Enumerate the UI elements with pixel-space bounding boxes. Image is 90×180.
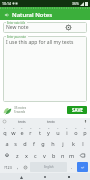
button[interactable]: 1 bbox=[1, 125, 9, 137]
button[interactable]: h bbox=[48, 137, 58, 149]
staticText: ?123 bbox=[4, 165, 12, 170]
staticText: English bbox=[44, 165, 54, 169]
button[interactable]: 3 bbox=[17, 125, 26, 137]
button[interactable]: 5 bbox=[35, 125, 44, 137]
staticText: 8 bbox=[66, 126, 68, 129]
button[interactable]: texts bbox=[7, 118, 36, 125]
staticText: New note bbox=[6, 24, 29, 31]
button[interactable]: Back bbox=[18, 174, 24, 180]
staticText: 36% bbox=[72, 1, 79, 6]
button[interactable]: ?123 bbox=[1, 162, 14, 172]
staticText: c bbox=[34, 152, 37, 159]
staticText: p bbox=[83, 129, 87, 136]
button[interactable]: Voice input bbox=[83, 119, 88, 124]
button[interactable]: 0 bbox=[80, 125, 89, 137]
staticText: s bbox=[14, 140, 17, 147]
staticText: h bbox=[51, 140, 55, 147]
button[interactable]: Back bbox=[3, 11, 10, 18]
staticText: o bbox=[74, 129, 78, 136]
button[interactable]: n bbox=[58, 149, 67, 161]
button[interactable]: s bbox=[11, 137, 20, 149]
button[interactable]: j bbox=[58, 137, 68, 149]
button[interactable]: m bbox=[67, 149, 76, 161]
staticText: m bbox=[69, 152, 75, 159]
button[interactable]: 6 bbox=[44, 125, 53, 137]
button[interactable]: Recents bbox=[66, 174, 72, 180]
staticText: 7 bbox=[57, 126, 59, 129]
staticText: 9 bbox=[75, 126, 77, 129]
button[interactable]: g bbox=[38, 137, 48, 149]
staticText: l bbox=[82, 140, 84, 147]
button[interactable]: k bbox=[68, 137, 78, 149]
button[interactable]: Space bbox=[30, 162, 67, 172]
staticText: f bbox=[33, 140, 35, 147]
button[interactable]: Clipboard bbox=[2, 119, 7, 124]
staticText: i bbox=[66, 129, 68, 136]
button[interactable]: 7 bbox=[53, 125, 62, 137]
button[interactable]: Shift bbox=[1, 149, 13, 161]
button[interactable]: d bbox=[20, 137, 29, 149]
staticText: 35 notes bbox=[14, 106, 27, 110]
staticText: a bbox=[5, 140, 9, 147]
staticText: , bbox=[17, 164, 19, 170]
button[interactable]: 9 bbox=[71, 125, 80, 137]
button[interactable]: Enter bbox=[77, 162, 88, 172]
staticText: Natural Notes bbox=[12, 11, 53, 19]
staticText: x bbox=[25, 152, 28, 159]
button[interactable] bbox=[3, 36, 87, 102]
button[interactable]: Backspace bbox=[76, 149, 89, 161]
staticText: z bbox=[16, 152, 19, 159]
button[interactable] bbox=[3, 22, 87, 33]
button[interactable]: 4 bbox=[26, 125, 35, 137]
staticText: 6 bbox=[48, 126, 50, 129]
staticText: v bbox=[43, 152, 46, 159]
staticText: textx bbox=[47, 119, 55, 124]
staticText: n bbox=[61, 152, 65, 159]
button[interactable]: Period bbox=[68, 162, 76, 172]
button[interactable]: Emoji bbox=[21, 162, 29, 172]
staticText: u bbox=[56, 129, 60, 136]
staticText: I use this app for all my texts bbox=[6, 39, 74, 46]
button[interactable]: v bbox=[40, 149, 49, 161]
button[interactable]: f bbox=[29, 137, 38, 149]
staticText: 3 bbox=[21, 126, 23, 129]
button[interactable]: z bbox=[13, 149, 22, 161]
button[interactable]: Home bbox=[42, 174, 48, 180]
button[interactable]: Comma bbox=[14, 162, 21, 172]
staticText: 0 bbox=[84, 126, 86, 129]
staticText: texts bbox=[18, 119, 26, 124]
button[interactable]: a bbox=[2, 137, 11, 149]
staticText: k bbox=[72, 140, 75, 147]
staticText: . bbox=[71, 164, 73, 170]
staticText: w bbox=[11, 129, 16, 136]
staticText: d bbox=[23, 140, 27, 147]
staticText: 1 bbox=[4, 126, 6, 129]
button[interactable]: textx bbox=[36, 118, 65, 125]
staticText: j bbox=[62, 140, 64, 147]
staticText: 2 bbox=[13, 126, 15, 129]
button[interactable]: 2 bbox=[9, 125, 17, 137]
button[interactable]: l bbox=[78, 137, 88, 149]
staticText: 5 bbox=[39, 126, 41, 129]
staticText: Enter your note bbox=[7, 35, 27, 39]
button[interactable]: c bbox=[31, 149, 40, 161]
staticText: 10:14 bbox=[2, 1, 11, 6]
staticText: q bbox=[3, 129, 7, 136]
staticText: r bbox=[29, 129, 32, 136]
button[interactable]: Settings bbox=[65, 24, 72, 31]
button[interactable]: 8 bbox=[62, 125, 71, 137]
staticText: 4 bbox=[30, 126, 32, 129]
staticText: e bbox=[20, 129, 24, 136]
button[interactable]: SAVE bbox=[67, 106, 87, 114]
staticText: y bbox=[47, 129, 50, 136]
staticText: g bbox=[41, 140, 45, 147]
staticText: 5 words bbox=[14, 110, 26, 114]
button[interactable]: x bbox=[22, 149, 31, 161]
staticText: Enter note title bbox=[7, 21, 26, 25]
staticText: b bbox=[52, 152, 56, 159]
button[interactable]: b bbox=[49, 149, 58, 161]
staticText: t bbox=[39, 129, 41, 136]
staticText: SAVE bbox=[72, 107, 83, 113]
